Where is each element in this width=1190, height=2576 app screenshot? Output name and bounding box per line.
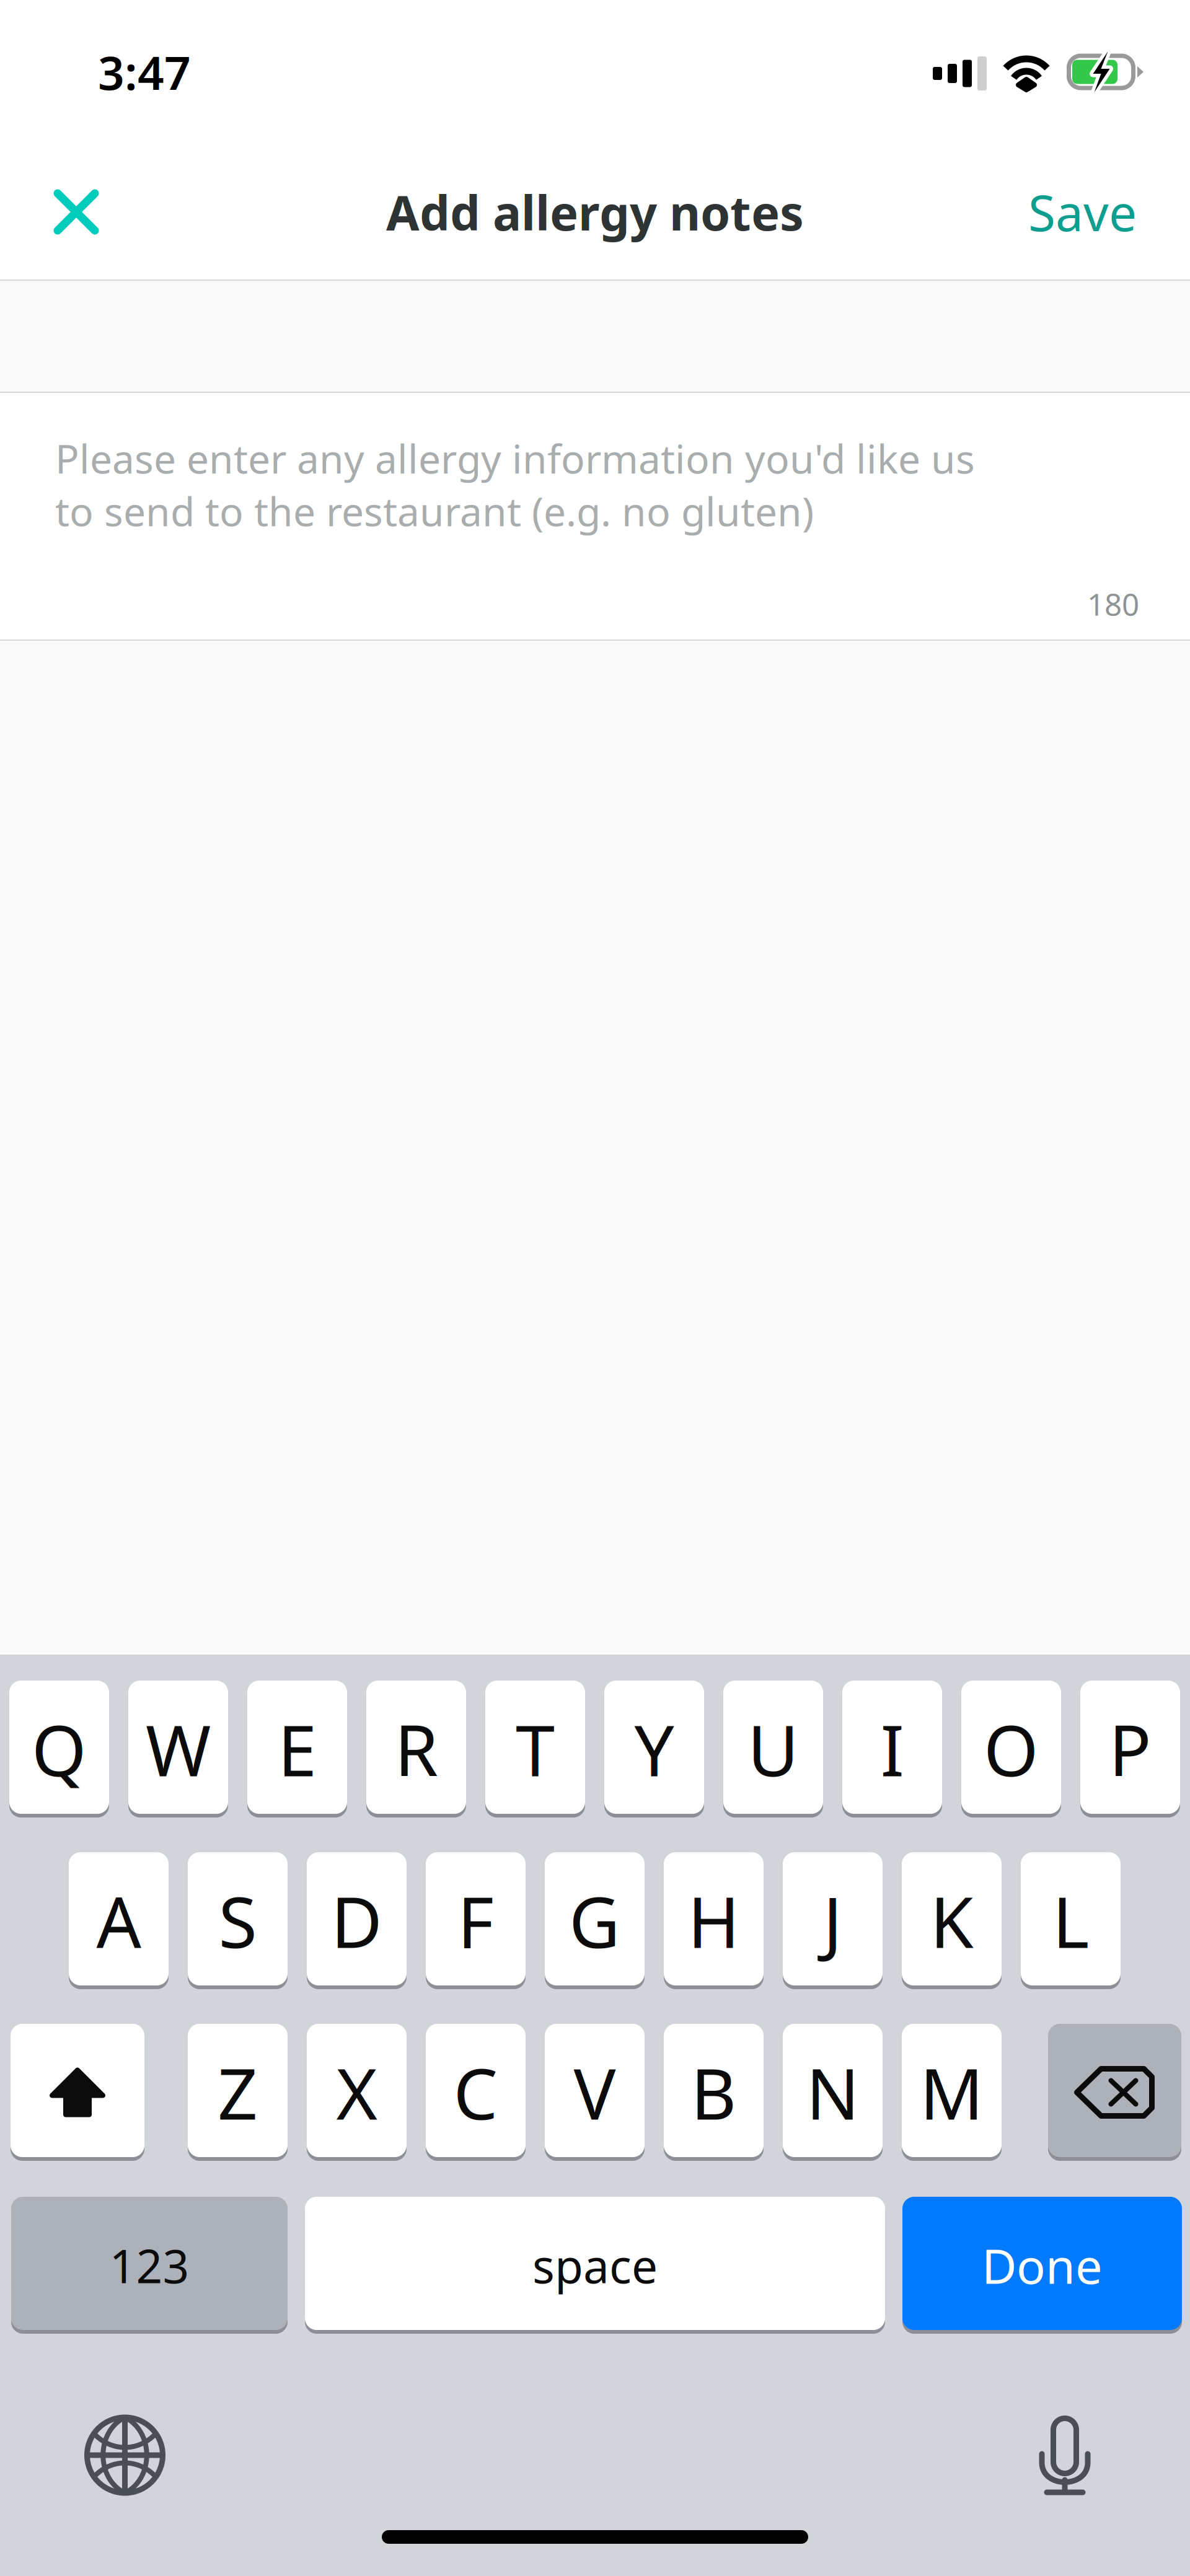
button[interactable]: Next keyboard bbox=[84, 2415, 165, 2496]
staticText: space bbox=[532, 2234, 658, 2296]
staticText: N bbox=[806, 2046, 859, 2139]
button[interactable]: R bbox=[366, 1681, 466, 1818]
staticText: F bbox=[457, 1874, 494, 1967]
button[interactable]: X bbox=[307, 2024, 407, 2161]
staticText: A bbox=[96, 1874, 141, 1967]
staticText: V bbox=[574, 2046, 616, 2139]
staticText: C bbox=[453, 2046, 498, 2139]
button[interactable]: W bbox=[128, 1681, 228, 1818]
staticText: J bbox=[823, 1874, 842, 1967]
staticText: L bbox=[1052, 1874, 1089, 1967]
staticText: Add allergy notes bbox=[386, 180, 804, 244]
staticText: Y bbox=[634, 1702, 674, 1796]
button[interactable]: P bbox=[1080, 1681, 1180, 1818]
button[interactable]: N bbox=[783, 2024, 883, 2161]
button[interactable]: G bbox=[545, 1852, 645, 1989]
button[interactable]: H bbox=[664, 1852, 764, 1989]
staticText: B bbox=[691, 2046, 737, 2139]
staticText: U bbox=[747, 1702, 799, 1796]
staticText: S bbox=[218, 1874, 257, 1967]
button[interactable]: B bbox=[664, 2024, 764, 2161]
staticText: I bbox=[880, 1702, 904, 1796]
button[interactable]: space bbox=[305, 2197, 885, 2334]
staticText: M bbox=[920, 2046, 984, 2139]
button[interactable]: Close bbox=[31, 167, 121, 257]
button[interactable]: Delete bbox=[1048, 2024, 1181, 2161]
button[interactable]: C bbox=[426, 2024, 526, 2161]
staticText: D bbox=[331, 1874, 382, 1967]
staticText: G bbox=[569, 1874, 620, 1967]
staticText: 123 bbox=[109, 2234, 189, 2296]
button[interactable]: Save bbox=[1006, 157, 1159, 267]
button[interactable]: K bbox=[902, 1852, 1002, 1989]
button[interactable]: V bbox=[545, 2024, 645, 2161]
button[interactable]: F bbox=[426, 1852, 526, 1989]
button[interactable]: L bbox=[1021, 1852, 1121, 1989]
button[interactable]: I bbox=[842, 1681, 942, 1818]
staticText: X bbox=[336, 2046, 377, 2139]
staticText: Please enter any allergy information you… bbox=[55, 432, 975, 537]
staticText: R bbox=[394, 1702, 438, 1796]
staticText: Save bbox=[1028, 179, 1137, 245]
button[interactable]: Z bbox=[188, 2024, 288, 2161]
button[interactable]: Y bbox=[604, 1681, 704, 1818]
staticText: E bbox=[278, 1702, 317, 1796]
staticText: Q bbox=[32, 1702, 87, 1796]
button[interactable]: Done bbox=[902, 2197, 1182, 2334]
staticText: P bbox=[1109, 1702, 1152, 1796]
staticText: K bbox=[930, 1874, 973, 1967]
staticText: Done bbox=[982, 2233, 1103, 2297]
staticText: H bbox=[688, 1874, 740, 1967]
staticText: Z bbox=[218, 2046, 258, 2139]
button[interactable]: A bbox=[69, 1852, 169, 1989]
button[interactable]: D bbox=[307, 1852, 407, 1989]
button[interactable]: Shift bbox=[11, 2024, 144, 2161]
staticText: 3:47 bbox=[98, 41, 191, 103]
button[interactable]: Dictate bbox=[1039, 2416, 1090, 2495]
button[interactable]: Q bbox=[9, 1681, 109, 1818]
button[interactable]: J bbox=[783, 1852, 883, 1989]
button[interactable]: T bbox=[485, 1681, 585, 1818]
staticText: O bbox=[984, 1702, 1039, 1796]
button[interactable]: O bbox=[961, 1681, 1061, 1818]
staticText: 180 bbox=[1087, 583, 1139, 624]
button[interactable]: 123 bbox=[11, 2197, 288, 2334]
button[interactable]: S bbox=[188, 1852, 288, 1989]
button[interactable]: U bbox=[723, 1681, 823, 1818]
button[interactable]: M bbox=[902, 2024, 1002, 2161]
staticText: T bbox=[516, 1702, 555, 1796]
staticText: W bbox=[146, 1702, 211, 1796]
button[interactable]: E bbox=[247, 1681, 347, 1818]
